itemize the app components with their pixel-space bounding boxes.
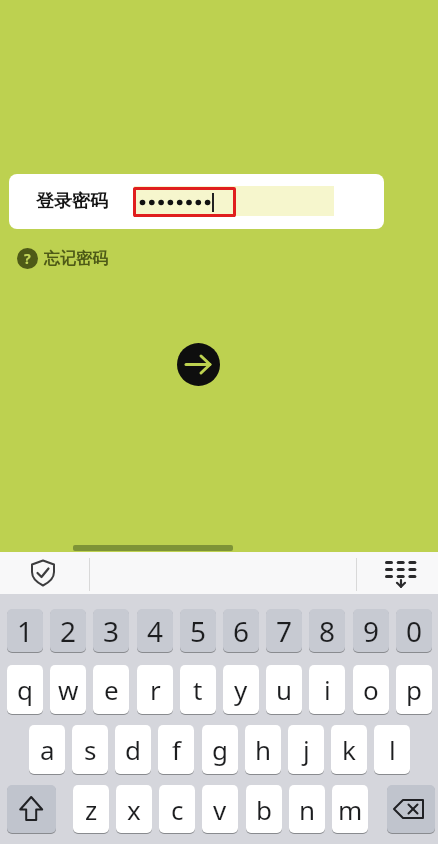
button[interactable]: 8 [309, 609, 345, 652]
staticText: 1 [17, 612, 34, 650]
staticText: n [299, 792, 316, 827]
button[interactable] [383, 556, 419, 590]
button[interactable]: u [266, 665, 302, 714]
staticText: b [256, 792, 272, 827]
staticText: f [172, 732, 181, 767]
button[interactable]: s [72, 725, 108, 774]
button[interactable]: 0 [396, 609, 432, 652]
button[interactable]: g [202, 725, 238, 774]
staticText: 2 [60, 612, 77, 650]
staticText: 5 [190, 612, 207, 650]
button[interactable] [28, 558, 58, 588]
button[interactable]: b [246, 785, 282, 833]
button[interactable]: z [73, 785, 109, 833]
button[interactable]: w [50, 665, 86, 714]
button[interactable] [387, 785, 435, 833]
button[interactable]: 忘记密码 [44, 248, 114, 269]
button[interactable]: e [93, 665, 129, 714]
staticText: s [84, 732, 97, 767]
staticText: k [342, 732, 356, 767]
staticText: 忘记密码 [44, 249, 108, 269]
button[interactable]: a [29, 725, 65, 774]
staticText: 0 [406, 612, 423, 650]
button[interactable]: x [116, 785, 152, 833]
button[interactable] [9, 174, 384, 229]
button[interactable] [177, 343, 220, 386]
button[interactable]: m [332, 785, 368, 833]
button[interactable]: h [245, 725, 281, 774]
staticText: y [234, 672, 248, 707]
button[interactable]: 5 [180, 609, 216, 652]
staticText: l [389, 732, 396, 767]
button[interactable]: 1 [7, 609, 43, 652]
button[interactable]: f [158, 725, 194, 774]
button[interactable]: p [396, 665, 432, 714]
button[interactable]: r [137, 665, 173, 714]
button[interactable]: 9 [353, 609, 389, 652]
staticText: a [40, 732, 55, 767]
staticText: w [58, 672, 79, 707]
staticText: q [17, 672, 33, 707]
button[interactable]: t [180, 665, 216, 714]
staticText: 登录密码 [36, 190, 108, 213]
staticText: p [406, 672, 422, 707]
button[interactable]: 3 [93, 609, 129, 652]
button[interactable]: q [7, 665, 43, 714]
staticText: d [125, 732, 141, 767]
button[interactable]: c [159, 785, 195, 833]
staticText: m [338, 792, 363, 827]
staticText: c [171, 792, 184, 827]
staticText: ? [24, 249, 31, 268]
staticText: 8 [319, 612, 336, 650]
button[interactable] [7, 785, 56, 833]
staticText: z [85, 792, 98, 827]
button[interactable]: i [309, 665, 345, 714]
staticText: h [255, 732, 272, 767]
button[interactable]: 6 [223, 609, 259, 652]
staticText: 3 [103, 612, 120, 650]
button[interactable]: o [353, 665, 389, 714]
staticText: r [150, 672, 161, 707]
staticText: 6 [233, 612, 250, 650]
button[interactable]: 7 [266, 609, 302, 652]
button[interactable]: j [288, 725, 324, 774]
button[interactable] [133, 187, 236, 217]
button[interactable]: 4 [137, 609, 173, 652]
button[interactable]: 2 [50, 609, 86, 652]
staticText: v [213, 792, 227, 827]
staticText: j [303, 732, 310, 767]
staticText: u [276, 672, 293, 707]
staticText: e [104, 672, 119, 707]
staticText: x [127, 792, 141, 827]
staticText: 7 [276, 612, 293, 650]
staticText: g [212, 732, 228, 767]
button[interactable]: d [115, 725, 151, 774]
button[interactable]: y [223, 665, 259, 714]
staticText: o [363, 672, 379, 707]
staticText: 9 [363, 612, 380, 650]
button[interactable]: n [289, 785, 325, 833]
button[interactable]: ? [17, 248, 38, 269]
button[interactable]: v [202, 785, 238, 833]
button[interactable]: l [374, 725, 410, 774]
button[interactable]: k [331, 725, 367, 774]
staticText: i [324, 672, 331, 707]
staticText: t [193, 672, 203, 707]
staticText: 4 [147, 612, 164, 650]
